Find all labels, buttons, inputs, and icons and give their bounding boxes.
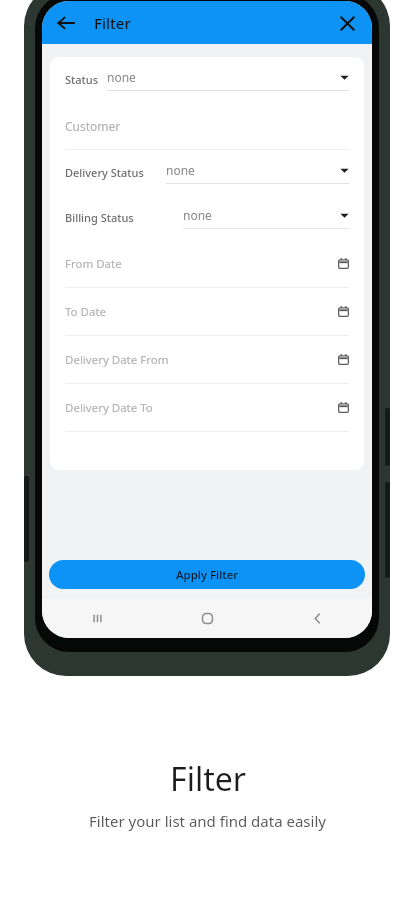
button[interactable]: Billing Status bbox=[65, 195, 349, 240]
button[interactable]: From Date bbox=[65, 240, 349, 288]
staticText: Filter bbox=[170, 757, 246, 801]
button[interactable]: Delivery Date From bbox=[65, 336, 349, 384]
button[interactable]: Delivery Date To bbox=[65, 384, 349, 432]
button[interactable]: Delivery Status bbox=[65, 150, 349, 195]
button[interactable]: To Date bbox=[65, 288, 349, 336]
staticText: Filter bbox=[94, 13, 131, 33]
staticText: Delivery Date To bbox=[65, 400, 338, 416]
staticText: Filter your list and find data easily bbox=[89, 811, 326, 831]
button[interactable]: Apply Filter bbox=[49, 560, 365, 589]
staticText: Delivery Status bbox=[65, 165, 144, 180]
staticText: From Date bbox=[65, 256, 338, 272]
button[interactable]: Customer bbox=[65, 102, 349, 150]
staticText: none bbox=[183, 207, 340, 223]
staticText: none bbox=[107, 69, 340, 85]
staticText: Status bbox=[65, 72, 99, 87]
staticText: Apply Filter bbox=[176, 567, 239, 583]
staticText: Customer bbox=[65, 118, 121, 134]
staticText: Billing Status bbox=[65, 210, 134, 225]
button[interactable]: Back bbox=[50, 7, 82, 39]
staticText: To Date bbox=[65, 304, 338, 320]
staticText: Delivery Date From bbox=[65, 352, 338, 368]
button[interactable]: Recents bbox=[42, 599, 152, 638]
button[interactable]: Status bbox=[65, 57, 349, 102]
button[interactable]: Back bbox=[262, 599, 372, 638]
staticText: none bbox=[166, 162, 340, 178]
button[interactable]: Home bbox=[152, 599, 262, 638]
button[interactable]: Close bbox=[332, 8, 362, 38]
